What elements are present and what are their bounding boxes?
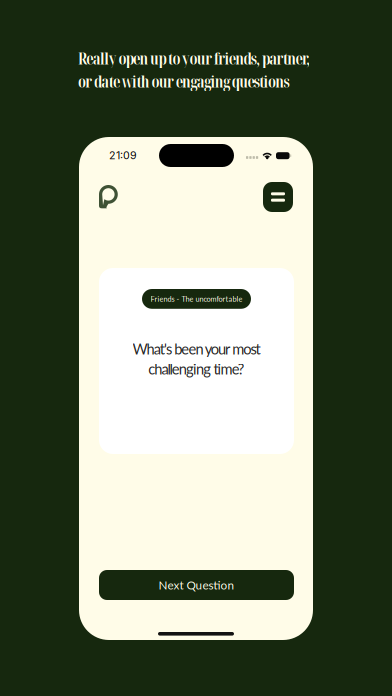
- staticText: What's been your most: [132, 340, 260, 358]
- staticText: challenging time?: [148, 360, 245, 378]
- staticText: or date with our engaging questions: [78, 71, 290, 92]
- button[interactable]: Menu: [263, 182, 293, 212]
- staticText: 21:09: [109, 149, 137, 162]
- staticText: Friends - The uncomfortable: [150, 294, 242, 303]
- staticText: Really open up to your friends, partner,: [78, 48, 310, 69]
- button[interactable]: Next Question: [99, 570, 294, 600]
- staticText: Next Question: [158, 578, 234, 592]
